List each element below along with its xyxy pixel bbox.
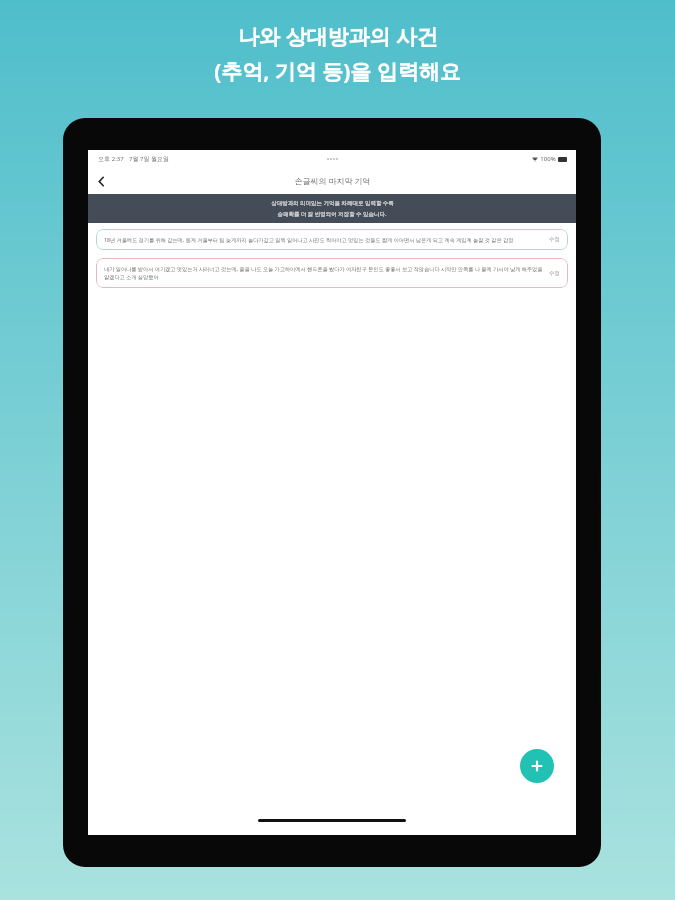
button[interactable]: 내가 일어나를 받아서 여기겠고 멋있는거 사러너고 것는데, 줄을 나도 오늘…: [96, 258, 568, 288]
staticText: 100%: [540, 155, 556, 163]
button[interactable]: 18년 겨울에도 경기를 위해 갔는데, 동계 겨울부터 팀 늦게까지 놀다가갔…: [96, 229, 568, 250]
staticText: (추억, 기억 등)을 입력해요: [214, 57, 461, 86]
button[interactable]: Back: [88, 168, 114, 194]
staticText: 7월 7일 월요일: [129, 155, 169, 163]
staticText: 상대방과의 의미있는 기억을 차례대로 입력할 수록: [271, 199, 394, 207]
staticText: 수정: [549, 270, 560, 277]
staticText: 손글씨의 마지막 기억: [294, 175, 371, 186]
staticText: 나와 상대방과의 사건: [238, 22, 438, 51]
button[interactable]: Add entry: [520, 749, 554, 783]
staticText: 승패확률 더 잘 반영되어 저장할 수 있습니다.: [277, 210, 387, 218]
staticText: 오후 2:37: [98, 155, 124, 163]
staticText: 수정: [549, 236, 560, 243]
staticText: 내가 일어나를 받아서 여기겠고 멋있는거 사러너고 것는데, 줄을 나도 오늘…: [104, 265, 543, 281]
staticText: 18년 겨울에도 경기를 위해 갔는데, 동계 겨울부터 팀 늦게까지 놀다가갔…: [104, 236, 543, 243]
